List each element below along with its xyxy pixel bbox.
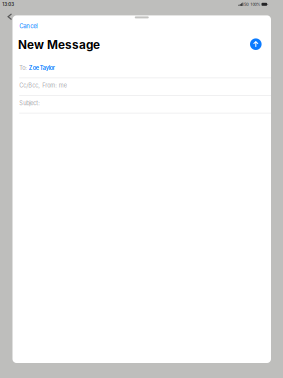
- staticText: 100%: [250, 2, 260, 7]
- button[interactable]: Back: [7, 13, 12, 20]
- button[interactable]: Subject:: [12, 96, 271, 113]
- staticText: 13:03: [2, 2, 14, 7]
- staticText: Cc/Bcc, From:: [19, 82, 57, 89]
- button[interactable]: Cancel: [16, 20, 40, 32]
- button[interactable]: To:: [12, 61, 271, 78]
- button[interactable]: Cc/Bcc, From:: [12, 78, 271, 96]
- staticText: 5G: [244, 2, 249, 7]
- button[interactable]: Send: [248, 36, 264, 52]
- staticText: Zoe Taylor: [29, 64, 55, 71]
- staticText: Subject:: [19, 100, 40, 106]
- staticText: Cancel: [19, 22, 37, 30]
- staticText: To:: [19, 64, 27, 71]
- staticText: New Message: [18, 38, 100, 52]
- staticText: me: [59, 82, 67, 89]
